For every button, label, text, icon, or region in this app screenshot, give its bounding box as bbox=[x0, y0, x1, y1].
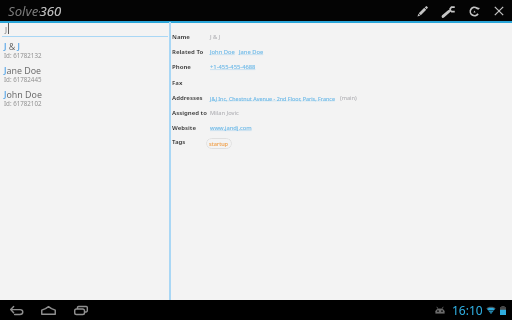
staticText: www.jandj.com bbox=[210, 124, 252, 132]
staticText: Milan Jovic bbox=[210, 109, 239, 117]
staticText: +1-455-455-4688 bbox=[210, 63, 256, 71]
staticText: Fax bbox=[172, 79, 183, 87]
staticText: 16:10 bbox=[452, 302, 483, 318]
button[interactable]: Home bbox=[37, 300, 59, 320]
button[interactable]: J & J bbox=[0, 41, 169, 65]
button[interactable]: John Doe bbox=[0, 89, 169, 113]
staticText: Related To bbox=[172, 48, 204, 56]
staticText: Name bbox=[172, 33, 190, 41]
button[interactable]: Close bbox=[487, 1, 511, 21]
button[interactable]: Refresh bbox=[462, 1, 486, 21]
staticText: Id: 61782132 bbox=[4, 51, 42, 59]
button[interactable]: Recent apps bbox=[70, 300, 92, 320]
staticText: Jane Doe bbox=[4, 64, 42, 76]
staticText: J bbox=[5, 24, 8, 34]
staticText: Phone bbox=[172, 63, 191, 71]
staticText: Tags bbox=[172, 138, 186, 146]
staticText: startup bbox=[209, 140, 229, 147]
staticText: Id: 61782102 bbox=[4, 99, 42, 107]
staticText: John Doe bbox=[4, 88, 42, 100]
button[interactable]: Jane Doe bbox=[0, 65, 169, 89]
staticText: Assigned to bbox=[172, 109, 207, 117]
staticText: Addresses bbox=[172, 94, 203, 102]
staticText: Id: 61782445 bbox=[4, 75, 42, 83]
staticText: J&J Inc, Chestnut Avenue - 2nd Floor, Pa… bbox=[210, 95, 335, 102]
staticText: Website bbox=[172, 124, 197, 132]
staticText: Jane Doe bbox=[239, 48, 264, 56]
staticText: Solve’360 bbox=[8, 2, 62, 20]
staticText: J & J bbox=[210, 33, 221, 41]
staticText: J & J bbox=[4, 40, 20, 52]
button[interactable]: Back bbox=[6, 300, 28, 320]
staticText: John Doe bbox=[210, 48, 235, 56]
button[interactable]: Settings bbox=[436, 1, 460, 21]
button[interactable]: Edit bbox=[410, 1, 434, 21]
staticText: (main) bbox=[340, 94, 357, 102]
